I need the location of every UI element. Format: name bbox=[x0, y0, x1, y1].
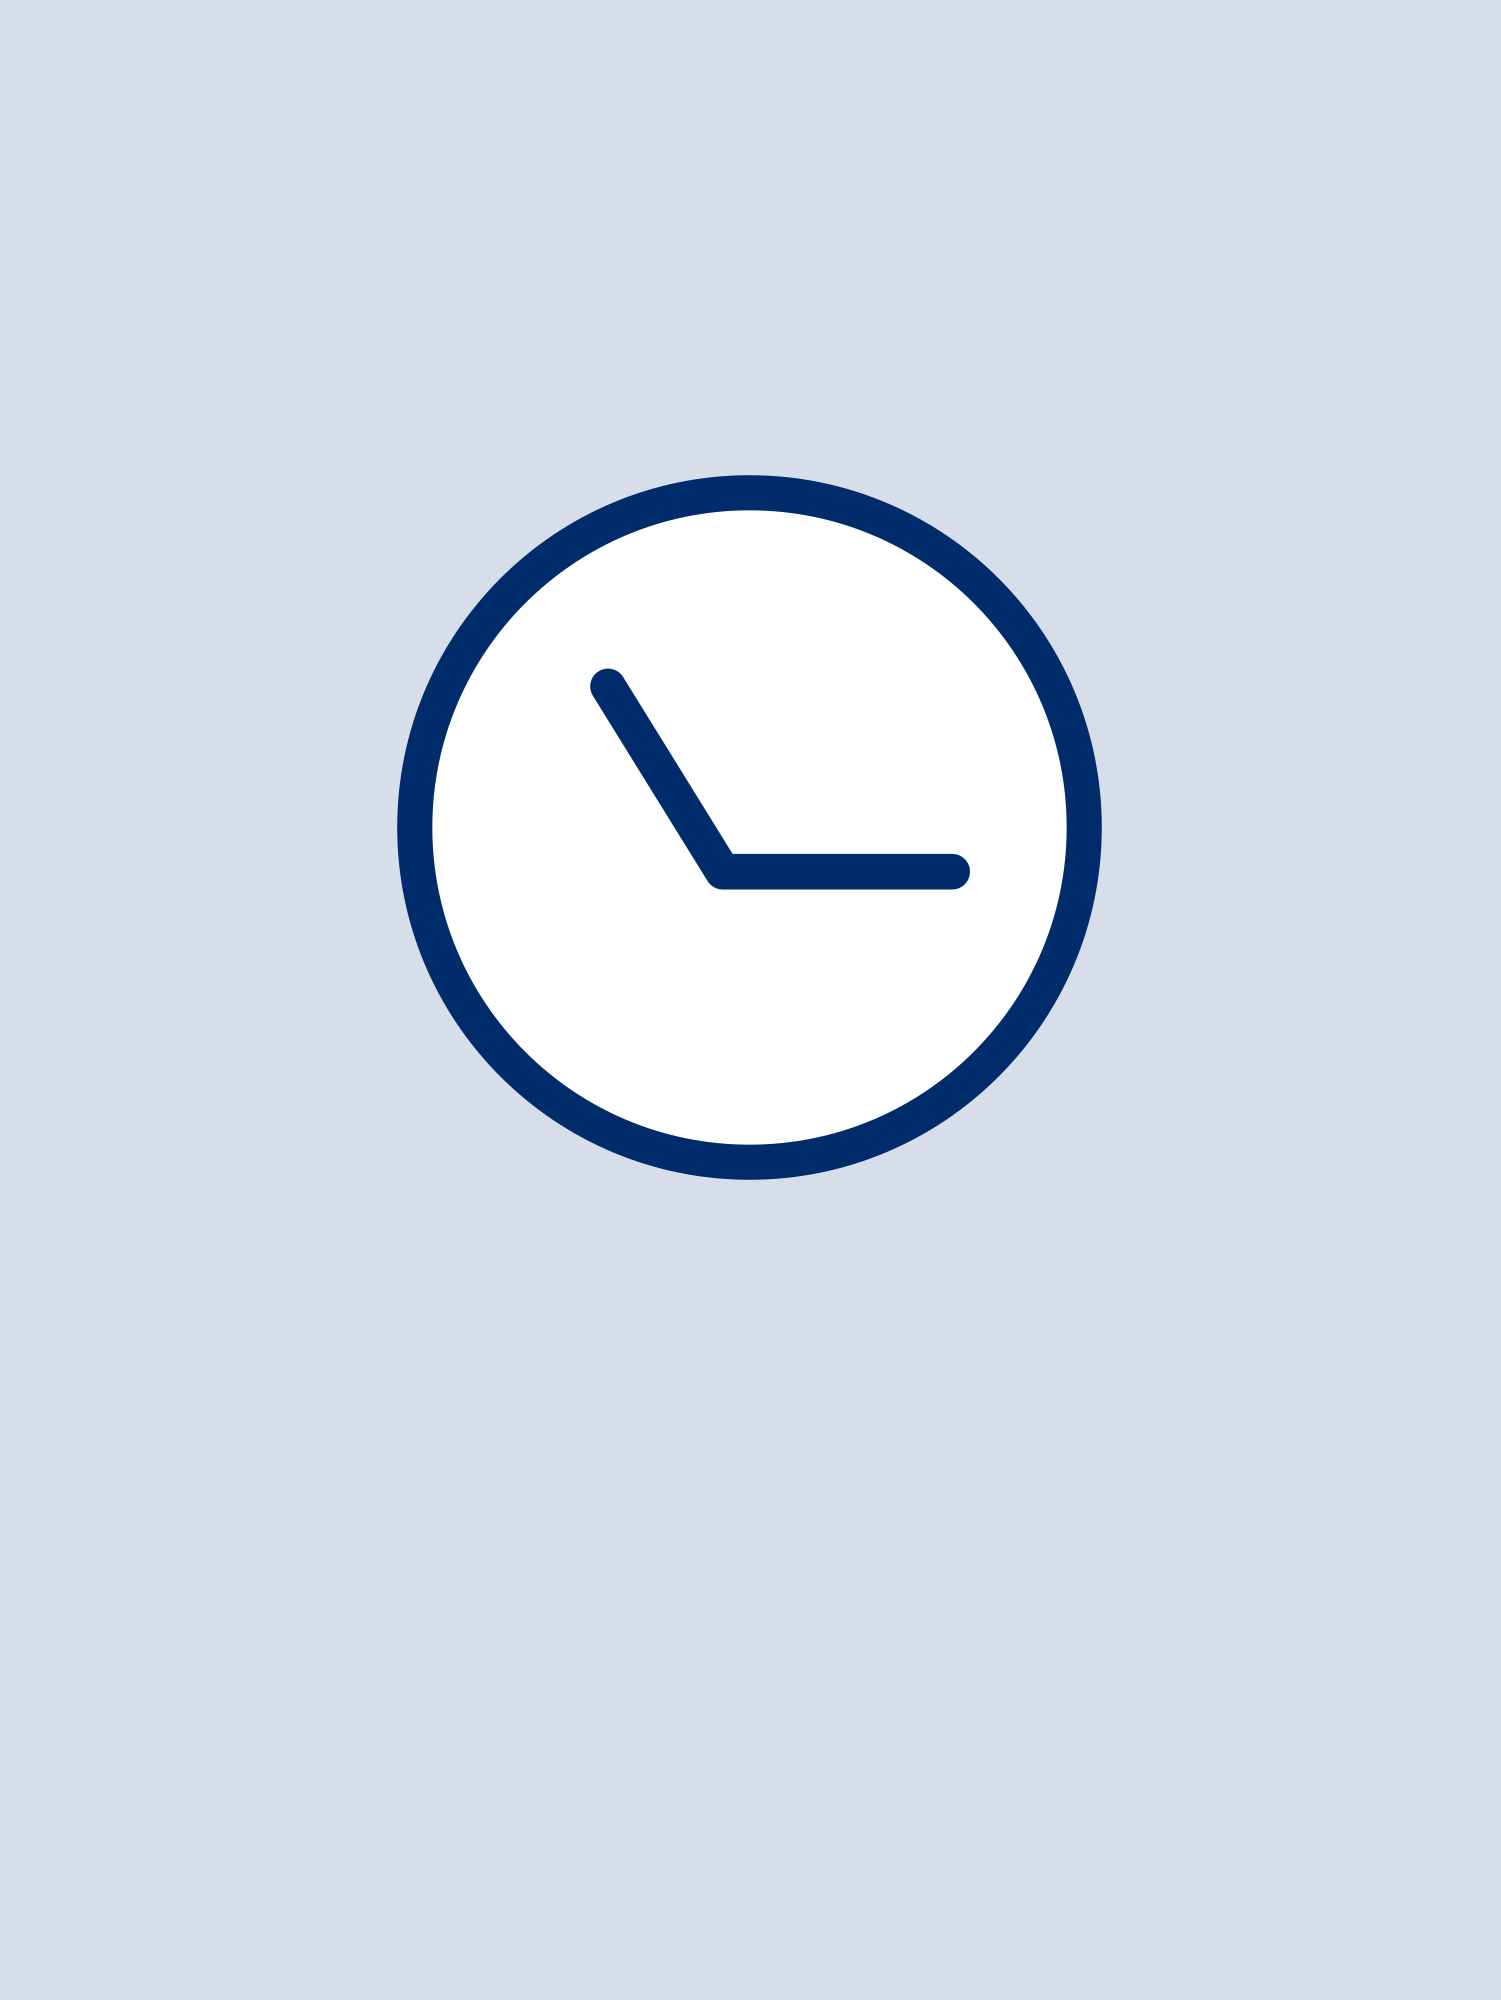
button[interactable]: Clock bbox=[0, 0, 1501, 2000]
